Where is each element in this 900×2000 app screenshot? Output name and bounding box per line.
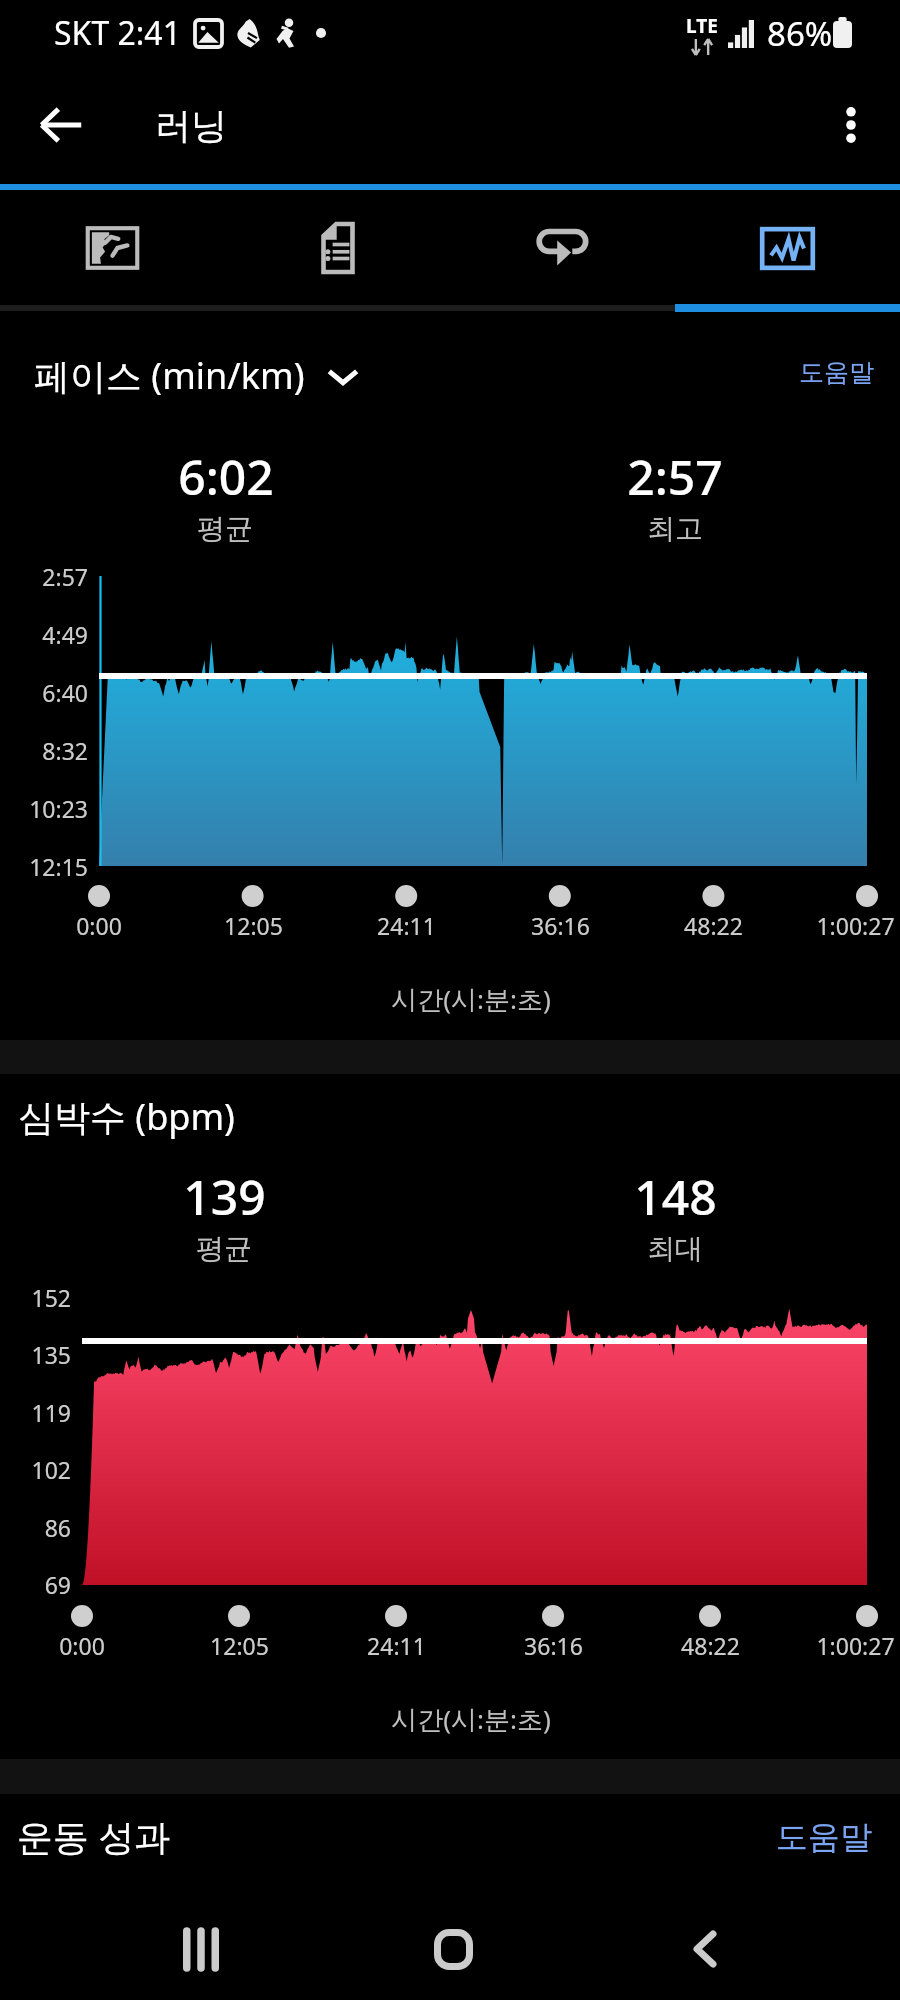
staticText: 48:22 — [681, 1630, 740, 1661]
staticText: 36:16 — [531, 910, 590, 941]
button[interactable]: 도움말 — [776, 1817, 872, 1857]
staticText: 시간(시:분:초) — [391, 981, 551, 1017]
staticText: 시간(시:분:초) — [391, 1701, 551, 1737]
staticText: 24:11 — [377, 910, 436, 941]
staticText: 12:15 — [29, 851, 88, 882]
staticText: SKT 2:41 — [54, 11, 181, 55]
staticText: 심박수 (bpm) — [18, 1092, 235, 1141]
staticText: 운동 성과 — [17, 1812, 171, 1861]
staticText: 최대 — [647, 1231, 703, 1266]
staticText: 평균 — [196, 1231, 252, 1266]
button[interactable]: 페이스 (min/km) — [34, 351, 361, 400]
staticText: 도움말 — [799, 357, 874, 388]
staticText: 러닝 — [155, 103, 227, 148]
staticText: 1:00:27 — [816, 910, 895, 941]
staticText: 12:05 — [210, 1630, 269, 1661]
button[interactable]: Charts — [675, 190, 900, 312]
staticText: 10:23 — [29, 793, 88, 824]
staticText: 139 — [183, 1164, 266, 1229]
button[interactable]: Back — [620, 1897, 790, 2000]
staticText: LTE — [686, 13, 718, 39]
staticText: 8:32 — [42, 735, 88, 766]
staticText: 2:57 — [627, 444, 723, 509]
button[interactable]: Home — [368, 1897, 538, 2000]
staticText: 0:00 — [76, 910, 122, 941]
staticText: 102 — [31, 1454, 71, 1485]
staticText: 최고 — [647, 511, 703, 546]
button[interactable]: More options — [818, 92, 884, 158]
button[interactable]: Map — [0, 190, 225, 312]
button[interactable]: Back — [28, 92, 94, 158]
staticText: 평균 — [197, 511, 253, 546]
staticText: 135 — [31, 1339, 71, 1370]
staticText: 도움말 — [776, 1817, 872, 1857]
staticText: 86 — [44, 1512, 71, 1543]
staticText: 12:05 — [224, 910, 283, 941]
staticText: 6:40 — [42, 677, 88, 708]
staticText: 0:00 — [59, 1630, 105, 1661]
staticText: 2:57 — [42, 561, 88, 592]
staticText: 148 — [634, 1164, 717, 1229]
staticText: 1:00:27 — [816, 1630, 895, 1661]
staticText: 6:02 — [178, 444, 274, 509]
staticText: 페이스 (min/km) — [34, 351, 305, 400]
staticText: 36:16 — [524, 1630, 583, 1661]
staticText: 4:49 — [42, 619, 88, 650]
button[interactable]: Laps — [450, 190, 675, 312]
staticText: 69 — [44, 1569, 71, 1600]
staticText: 86% — [767, 11, 833, 56]
staticText: 152 — [31, 1282, 71, 1313]
button[interactable]: Details — [225, 190, 450, 312]
staticText: 24:11 — [367, 1630, 426, 1661]
button[interactable]: 도움말 — [799, 357, 874, 388]
staticText: 48:22 — [684, 910, 743, 941]
staticText: 119 — [31, 1397, 71, 1428]
button[interactable]: Recents — [116, 1897, 286, 2000]
